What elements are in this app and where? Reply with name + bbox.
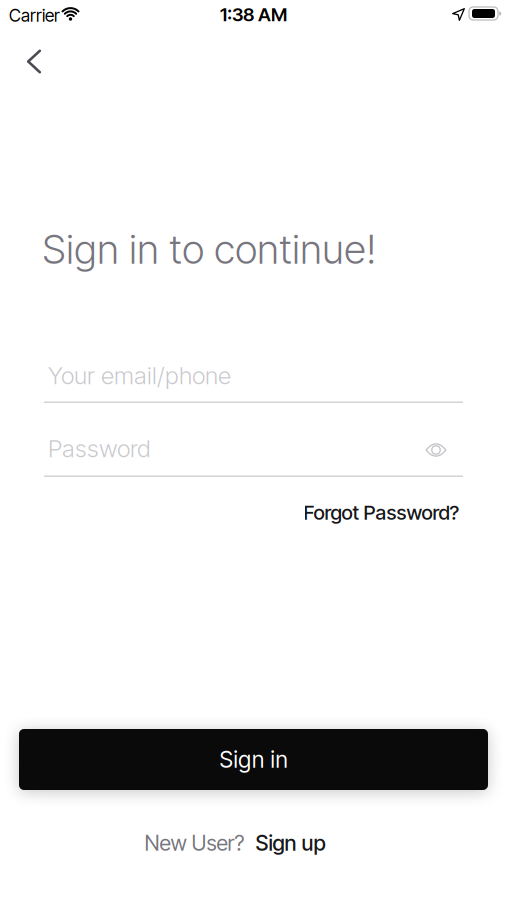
staticText: Sign in: [220, 746, 287, 773]
staticText: Forgot Password?: [303, 500, 459, 525]
staticText: Your email/phone: [48, 361, 231, 390]
staticText: Carrier: [9, 5, 60, 26]
staticText: Password: [48, 434, 151, 463]
button[interactable]: Back: [26, 49, 42, 75]
button[interactable]: Forgot Password?: [303, 500, 459, 525]
staticText: New User?: [144, 830, 244, 856]
staticText: Sign in to continue!: [42, 225, 376, 273]
button[interactable]: Show password: [425, 442, 447, 458]
button[interactable]: Sign up: [255, 830, 325, 856]
staticText: 1:38 AM: [220, 3, 287, 26]
staticText: Sign up: [255, 830, 325, 856]
button[interactable]: Sign in: [19, 729, 488, 790]
